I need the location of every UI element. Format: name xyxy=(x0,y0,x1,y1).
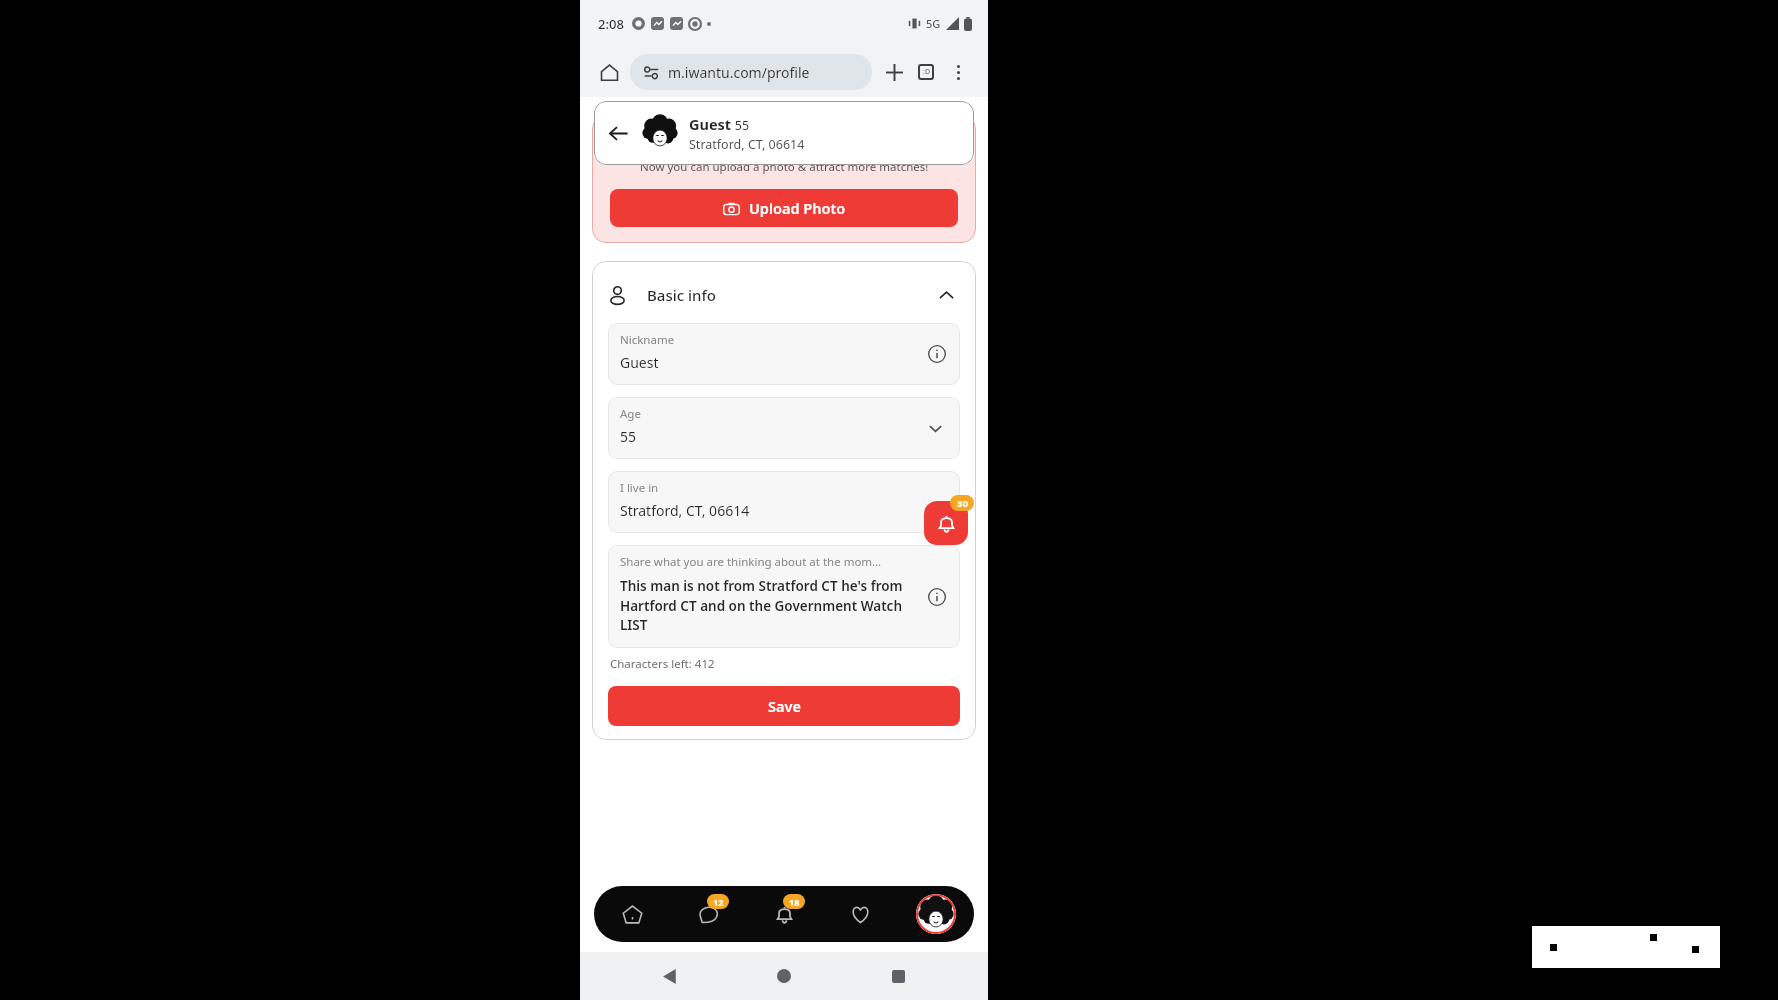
staticText: Guest 55 xyxy=(689,114,750,134)
button[interactable]: Recents xyxy=(874,952,922,1000)
button[interactable]: More options xyxy=(942,56,974,88)
staticText: 18 xyxy=(789,896,800,908)
button[interactable]: Home xyxy=(594,57,624,87)
button[interactable]: Save xyxy=(608,686,960,726)
button[interactable]: Share what you are thinking about at the… xyxy=(608,545,960,648)
button[interactable]: Basic info xyxy=(608,275,960,315)
button[interactable]: I live in xyxy=(608,471,960,533)
staticText: Stratford, CT, 06614 xyxy=(689,136,805,153)
button[interactable]: Info xyxy=(924,584,950,610)
staticText: Guest xyxy=(620,353,659,372)
button[interactable]: Select age xyxy=(922,415,948,441)
button[interactable]: Profile xyxy=(898,886,974,942)
staticText: 30 xyxy=(957,497,968,510)
button[interactable]: m.iwantu.com/profile xyxy=(630,54,872,90)
button[interactable]: Home xyxy=(594,886,670,942)
button[interactable]: Upload Photo xyxy=(610,189,958,227)
staticText: m.iwantu.com/profile xyxy=(668,63,810,82)
button[interactable]: Messages xyxy=(670,886,746,942)
staticText: Save xyxy=(768,696,801,716)
staticText: 55 xyxy=(620,427,637,446)
button[interactable]: Nickname xyxy=(608,323,960,385)
staticText: I live in xyxy=(620,480,659,496)
staticText: 12 xyxy=(713,896,724,908)
button[interactable]: New tab xyxy=(878,56,910,88)
button[interactable]: Likes xyxy=(822,886,898,942)
button[interactable]: Info xyxy=(924,341,950,367)
button[interactable]: Back xyxy=(594,101,642,165)
button[interactable]: Notifications xyxy=(924,501,968,545)
staticText: 5G xyxy=(926,16,941,31)
staticText: Age xyxy=(620,406,641,422)
button[interactable]: Home xyxy=(760,952,808,1000)
button[interactable]: Back xyxy=(646,952,694,1000)
staticText: Now you can upload a photo & attract mor… xyxy=(640,159,929,175)
other: Collapse xyxy=(932,281,960,309)
staticText: Share what you are thinking about at the… xyxy=(620,554,882,570)
staticText: Nickname xyxy=(620,332,675,348)
staticText: Basic info xyxy=(647,285,716,305)
button[interactable]: Age xyxy=(608,397,960,459)
staticText: Stratford, CT, 06614 xyxy=(620,501,750,520)
staticText: 2:08 xyxy=(598,15,624,33)
button[interactable]: Tabs xyxy=(910,56,942,88)
button[interactable]: Notifications xyxy=(746,886,822,942)
staticText: Characters left: 412 xyxy=(610,656,715,672)
staticText: Upload Photo xyxy=(749,198,846,218)
staticText: :D xyxy=(923,67,930,77)
staticText: This man is not from Stratford CT he's f… xyxy=(620,577,914,634)
